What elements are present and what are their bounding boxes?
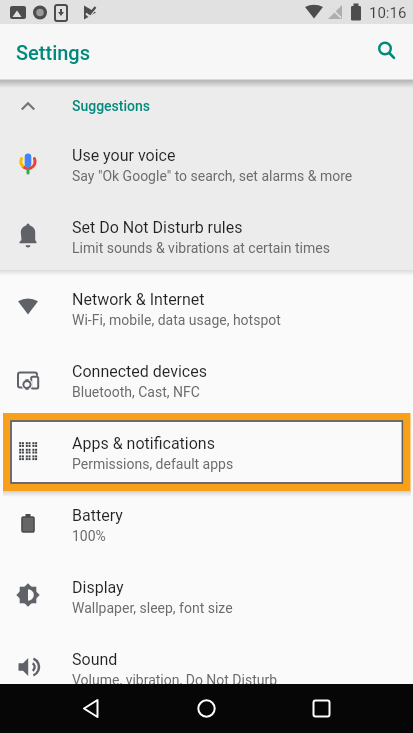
- staticText: Wi-Fi, mobile, data usage, hotspot: [72, 312, 281, 328]
- staticText: Display: [72, 578, 124, 597]
- staticText: Sound: [72, 650, 118, 669]
- staticText: Volume, vibration, Do Not Disturb: [72, 672, 278, 688]
- staticText: Bluetooth, Cast, NFC: [72, 384, 200, 400]
- staticText: Settings: [16, 41, 91, 64]
- staticText: Connected devices: [72, 362, 207, 381]
- staticText: Use your voice: [72, 146, 176, 165]
- staticText: Suggestions: [72, 98, 151, 114]
- staticText: Permissions, default apps: [72, 456, 234, 472]
- staticText: Limit sounds & vibrations at certain tim…: [72, 240, 330, 256]
- staticText: Set Do Not Disturb rules: [72, 218, 243, 237]
- staticText: 100%: [72, 528, 106, 544]
- staticText: Wallpaper, sleep, font size: [72, 600, 233, 616]
- staticText: Network & Internet: [72, 290, 205, 309]
- staticText: Apps & notifications: [72, 434, 215, 453]
- staticText: Say "Ok Google" to search, set alarms & …: [72, 168, 353, 184]
- staticText: Battery: [72, 506, 123, 525]
- staticText: 10:16: [369, 4, 407, 22]
